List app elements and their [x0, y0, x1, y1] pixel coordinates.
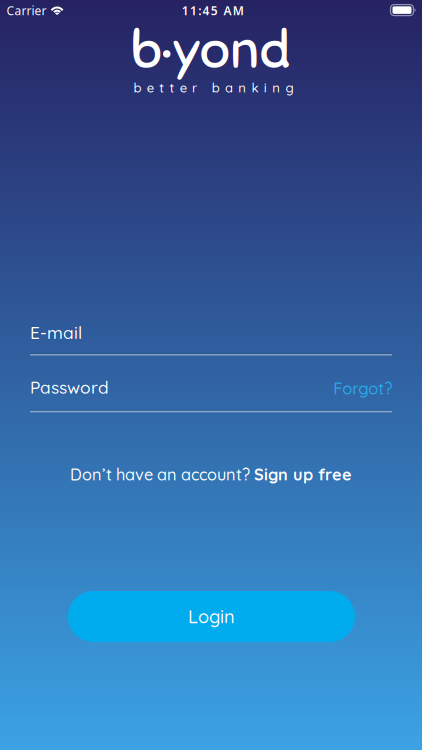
staticText: E-mail — [30, 322, 82, 343]
staticText: Don’t have an account? Sign up free — [70, 465, 352, 484]
staticText: yond — [173, 17, 290, 83]
button[interactable]: Password — [30, 376, 392, 412]
staticText: better banking — [134, 79, 293, 96]
button[interactable]: Don’t have an account? Sign up free — [70, 465, 352, 484]
staticText: 11:45 AM — [182, 2, 244, 18]
staticText: Password — [30, 376, 109, 398]
staticText: Login — [188, 605, 235, 628]
button[interactable]: Login — [68, 591, 355, 642]
button[interactable]: E-mail — [30, 322, 392, 356]
staticText: Carrier — [6, 2, 46, 18]
staticText: Forgot? — [333, 378, 392, 399]
button[interactable]: Forgot? — [333, 378, 392, 399]
staticText: b — [130, 17, 162, 83]
